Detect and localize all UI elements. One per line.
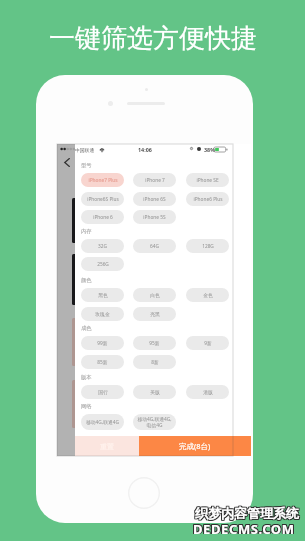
staticText: 织梦内容管理系统: [194, 504, 298, 520]
staticText: 黑色: [98, 292, 108, 298]
staticText: 8新: [151, 359, 159, 366]
staticText: 重置: [100, 442, 114, 451]
staticText: 版本: [81, 374, 92, 381]
staticText: iPhone6 Plus: [193, 196, 223, 203]
button[interactable]: 85新: [81, 355, 124, 369]
staticText: DEDECMS.COM: [192, 519, 294, 537]
staticText: iPhone7 Plus: [88, 177, 118, 184]
staticText: iPhone 7: [145, 177, 165, 184]
staticText: DEDECMS.COM: [194, 519, 296, 537]
staticText: DEDECMS.COM: [194, 520, 296, 538]
button[interactable]: 移动4G,联通4G, 电信4G: [133, 414, 176, 430]
staticText: 95新: [149, 340, 160, 347]
button[interactable]: iPhone 5S: [133, 210, 176, 224]
staticText: 一键筛选方便快捷: [49, 22, 257, 55]
staticText: 64G: [150, 243, 159, 250]
staticText: DEDECMS.COM: [193, 519, 295, 537]
button[interactable]: iPhone 6: [81, 210, 124, 224]
button[interactable]: 8新: [133, 355, 176, 369]
button[interactable]: 完成(8台): [139, 436, 251, 456]
button[interactable]: Back: [59, 154, 74, 171]
staticText: 国行: [98, 389, 108, 395]
staticText: 移动4G,联通4G, 电信4G: [137, 416, 172, 429]
staticText: 中国联通: [75, 147, 95, 153]
staticText: 玫瑰金: [95, 311, 110, 317]
staticText: 织梦内容管理系统: [195, 504, 299, 520]
button[interactable]: 重置: [75, 436, 139, 456]
staticText: DEDECMS.COM: [193, 520, 295, 538]
staticText: iPhone6S Plus: [87, 196, 119, 203]
button[interactable]: 美版: [133, 385, 176, 399]
staticText: 型号: [81, 162, 92, 169]
button[interactable]: 256G: [81, 257, 124, 271]
button[interactable]: 玫瑰金: [81, 307, 124, 321]
button[interactable]: 128G: [186, 239, 229, 253]
staticText: 99新: [97, 340, 108, 347]
staticText: 织梦内容管理系统: [196, 506, 300, 522]
button[interactable]: 95新: [133, 336, 176, 350]
staticText: 美版: [150, 389, 160, 395]
staticText: 85新: [97, 359, 108, 366]
staticText: 32G: [98, 243, 107, 250]
staticText: 织梦内容管理系统: [196, 505, 300, 521]
staticText: 9新: [204, 340, 212, 347]
staticText: 织梦内容管理系统: [195, 505, 299, 521]
staticText: 织梦内容管理系统: [194, 505, 298, 521]
staticText: DEDECMS.COM: [192, 520, 294, 538]
button[interactable]: 国行: [81, 385, 124, 399]
button[interactable]: 黑色: [81, 288, 124, 302]
button[interactable]: 亮黑: [133, 307, 176, 321]
staticText: DEDECMS.COM: [193, 520, 295, 538]
staticText: 织梦内容管理系统: [196, 504, 300, 520]
staticText: 港版: [203, 389, 213, 395]
staticText: DEDECMS.COM: [192, 520, 294, 538]
staticText: 内存: [81, 228, 92, 235]
button[interactable]: iPhone7 Plus: [81, 173, 124, 187]
staticText: 金色: [203, 292, 213, 298]
staticText: 亮黑: [150, 311, 160, 317]
staticText: DEDECMS.COM: [194, 520, 296, 538]
staticText: 完成(8台): [179, 441, 211, 451]
button[interactable]: iPhone 6S: [133, 192, 176, 206]
staticText: iPhone SE: [196, 177, 219, 184]
staticText: iPhone 5S: [143, 214, 166, 221]
button[interactable]: 99新: [81, 336, 124, 350]
staticText: 14:06: [138, 146, 152, 153]
button[interactable]: 金色: [186, 288, 229, 302]
staticText: 256G: [97, 261, 109, 268]
staticText: 白色: [150, 292, 160, 298]
staticText: 移动4G,联通4G: [86, 419, 119, 426]
staticText: 38%: [204, 146, 216, 153]
staticText: 织梦内容管理系统: [194, 506, 298, 522]
button[interactable]: 白色: [133, 288, 176, 302]
staticText: iPhone 6: [93, 214, 113, 221]
button[interactable]: 港版: [186, 385, 229, 399]
button[interactable]: 32G: [81, 239, 124, 253]
staticText: iPhone 6S: [143, 196, 166, 203]
button[interactable]: iPhone6S Plus: [81, 192, 124, 206]
button[interactable]: 移动4G,联通4G: [81, 414, 124, 430]
button[interactable]: 64G: [133, 239, 176, 253]
button[interactable]: iPhone6 Plus: [186, 192, 229, 206]
staticText: 成色: [81, 325, 92, 332]
button[interactable]: iPhone SE: [186, 173, 229, 187]
button[interactable]: 9新: [186, 336, 229, 350]
button[interactable]: iPhone 7: [133, 173, 176, 187]
staticText: 128G: [202, 243, 214, 250]
staticText: 颜色: [81, 277, 92, 284]
staticText: 织梦内容管理系统: [195, 506, 299, 522]
staticText: 网络: [81, 403, 92, 410]
